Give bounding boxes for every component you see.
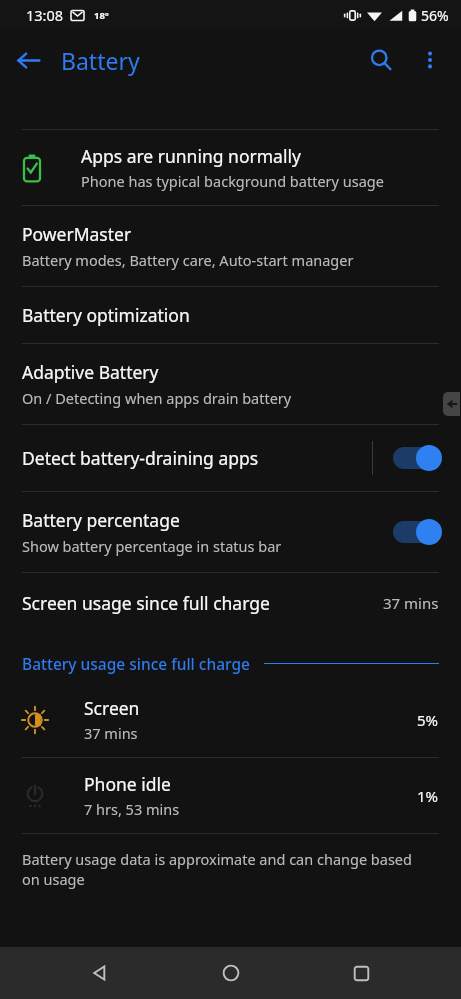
button[interactable]: Screen usage since full charge <box>0 573 461 633</box>
staticText: 37 mins <box>383 593 439 613</box>
staticText: Screen usage since full charge <box>22 591 383 615</box>
button[interactable]: Apps are running normally <box>0 130 461 205</box>
button[interactable]: Back <box>70 947 130 999</box>
staticText: Battery usage data is approximate and ca… <box>22 849 433 890</box>
staticText: 56% <box>421 6 449 25</box>
staticText: Phone has typical background battery usa… <box>81 171 384 191</box>
button[interactable]: Search <box>355 34 407 86</box>
staticText: Battery <box>61 45 140 76</box>
button[interactable]: Detect battery-draining apps <box>0 425 461 491</box>
staticText: PowerMaster <box>22 222 132 246</box>
button[interactable]: Battery optimization <box>0 287 461 343</box>
staticText: 18° <box>94 9 109 22</box>
button[interactable]: Screen <box>0 682 461 757</box>
button[interactable]: Recent apps <box>331 947 391 999</box>
button[interactable]: Back <box>0 32 56 88</box>
button[interactable]: Home <box>201 947 261 999</box>
staticText: On / Detecting when apps drain battery <box>22 388 292 408</box>
staticText: 7 hrs, 53 mins <box>84 799 180 819</box>
button[interactable]: Detect battery-draining apps <box>393 445 443 471</box>
staticText: Battery optimization <box>22 303 190 327</box>
staticText: Adaptive Battery <box>22 360 159 384</box>
button[interactable]: PowerMaster <box>0 206 461 286</box>
staticText: 5% <box>417 710 439 730</box>
button[interactable]: Battery percentage <box>0 492 461 572</box>
staticText: Detect battery-draining apps <box>22 446 259 470</box>
button[interactable]: Phone idle <box>0 758 461 833</box>
staticText: Battery modes, Battery care, Auto-start … <box>22 250 354 270</box>
button[interactable]: Edge panel <box>443 392 460 416</box>
button[interactable]: Battery percentage <box>393 519 443 545</box>
staticText: 13:08 <box>26 5 64 25</box>
staticText: 37 mins <box>84 723 138 743</box>
button[interactable]: Adaptive Battery <box>0 344 461 424</box>
staticText: Battery usage since full charge <box>22 653 250 674</box>
staticText: Show battery percentage in status bar <box>22 536 282 556</box>
staticText: Apps are running normally <box>81 144 301 168</box>
staticText: 1% <box>417 786 439 806</box>
staticText: Phone idle <box>84 772 171 796</box>
button[interactable]: More options <box>407 37 453 83</box>
staticText: Battery percentage <box>22 508 180 532</box>
staticText: Screen <box>84 696 140 720</box>
